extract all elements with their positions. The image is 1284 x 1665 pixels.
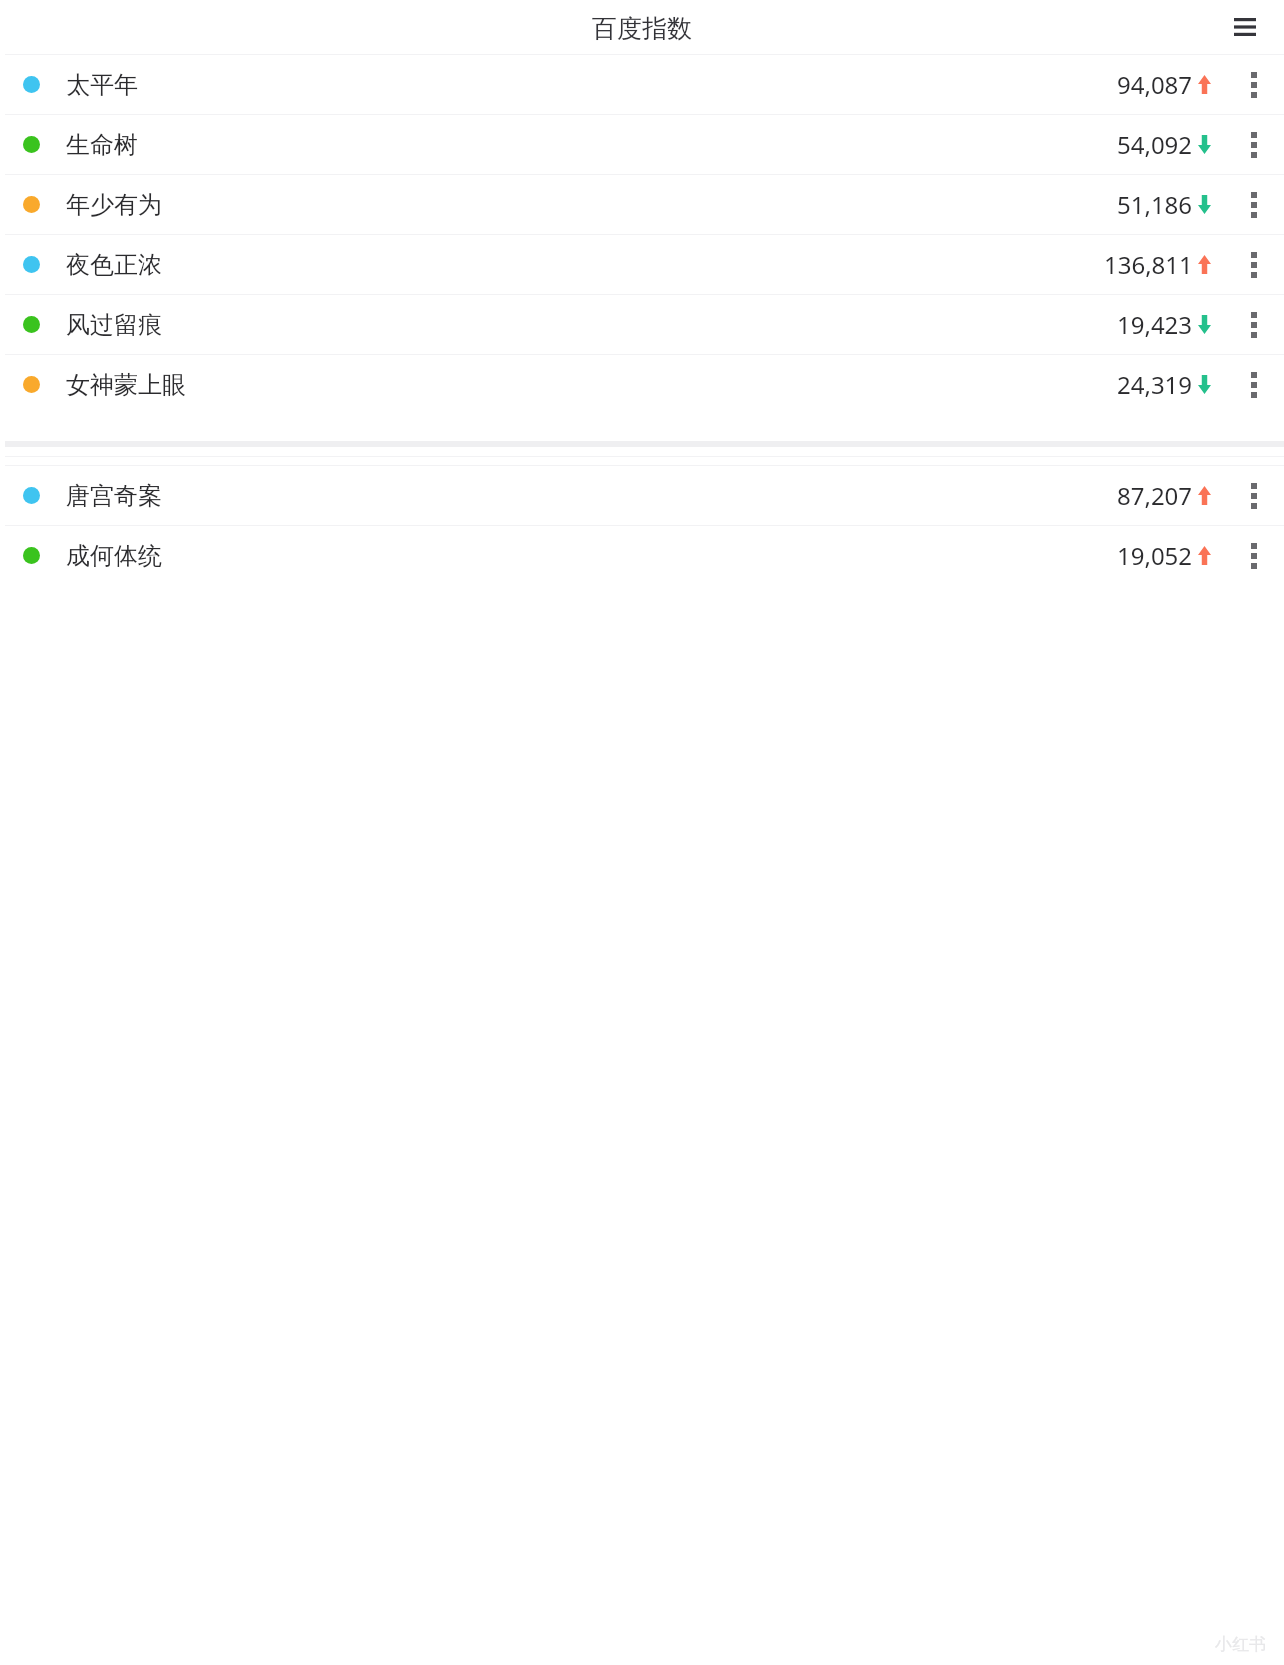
staticText: 唐宫奇案 [66, 481, 162, 511]
staticText: 百度指数 [592, 13, 692, 44]
button[interactable]: 年少有为 [0, 175, 1284, 234]
staticText: 生命树 [66, 130, 138, 160]
button[interactable]: More options [1237, 121, 1271, 169]
button[interactable]: 成何体统 [0, 526, 1284, 585]
button[interactable]: 女神蒙上眼 [0, 355, 1284, 414]
staticText: 成何体统 [66, 541, 162, 571]
staticText: 小红书 [1215, 1634, 1266, 1655]
button[interactable]: More options [1237, 472, 1271, 520]
staticText: 19,423 [1117, 308, 1193, 341]
button[interactable]: 生命树 [0, 115, 1284, 174]
button[interactable]: More options [1237, 241, 1271, 289]
staticText: 51,186 [1117, 188, 1193, 221]
button[interactable]: 风过留痕 [0, 295, 1284, 354]
staticText: 19,052 [1117, 539, 1193, 572]
staticText: 24,319 [1117, 368, 1193, 401]
staticText: 太平年 [66, 70, 138, 100]
staticText: 风过留痕 [66, 310, 162, 340]
staticText: 94,087 [1117, 68, 1193, 101]
button[interactable]: More options [1237, 361, 1271, 409]
staticText: 夜色正浓 [66, 250, 162, 280]
button[interactable]: More options [1237, 301, 1271, 349]
button[interactable]: Menu [1228, 10, 1262, 44]
staticText: 54,092 [1117, 128, 1193, 161]
staticText: 女神蒙上眼 [66, 370, 186, 400]
button[interactable]: More options [1237, 181, 1271, 229]
button[interactable]: More options [1237, 61, 1271, 109]
staticText: 年少有为 [66, 190, 162, 220]
staticText: 136,811 [1104, 248, 1193, 281]
staticText: 87,207 [1117, 479, 1193, 512]
button[interactable]: 夜色正浓 [0, 235, 1284, 294]
button[interactable]: 唐宫奇案 [0, 466, 1284, 525]
button[interactable]: More options [1237, 532, 1271, 580]
button[interactable]: 太平年 [0, 55, 1284, 114]
